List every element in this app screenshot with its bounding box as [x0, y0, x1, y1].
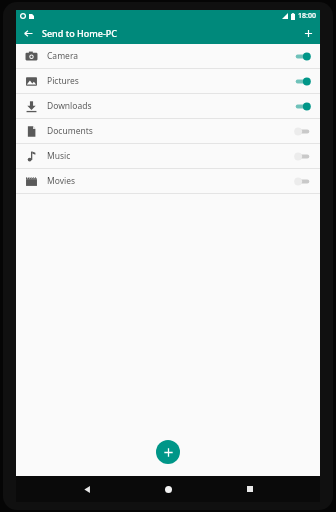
button[interactable]: Camera — [16, 44, 320, 68]
button[interactable]: Back — [20, 25, 36, 41]
button[interactable]: Downloads toggle — [292, 98, 312, 114]
staticText: Camera — [47, 50, 78, 62]
button[interactable]: Recents — [239, 478, 261, 500]
button[interactable]: Camera toggle — [292, 48, 312, 64]
staticText: Downloads — [47, 100, 92, 112]
staticText: Documents — [47, 125, 93, 137]
button[interactable]: Add item — [156, 440, 180, 464]
button[interactable]: Documents — [16, 119, 320, 143]
button[interactable]: Music toggle — [292, 148, 312, 164]
button[interactable]: Pictures toggle — [292, 73, 312, 89]
button[interactable]: Back — [76, 478, 98, 500]
button[interactable]: Music — [16, 144, 320, 168]
staticText: Pictures — [47, 75, 79, 87]
button[interactable]: Movies toggle — [292, 173, 312, 189]
button[interactable]: Documents toggle — [292, 123, 312, 139]
staticText: Music — [47, 150, 71, 162]
staticText: Movies — [47, 175, 76, 187]
button[interactable]: Pictures — [16, 69, 320, 93]
button[interactable]: Add — [300, 25, 316, 41]
button[interactable]: Movies — [16, 169, 320, 193]
staticText: Send to Home-PC — [42, 27, 117, 39]
button[interactable]: Home — [157, 478, 179, 500]
button[interactable]: Downloads — [16, 94, 320, 118]
staticText: 18:00 — [298, 11, 316, 21]
